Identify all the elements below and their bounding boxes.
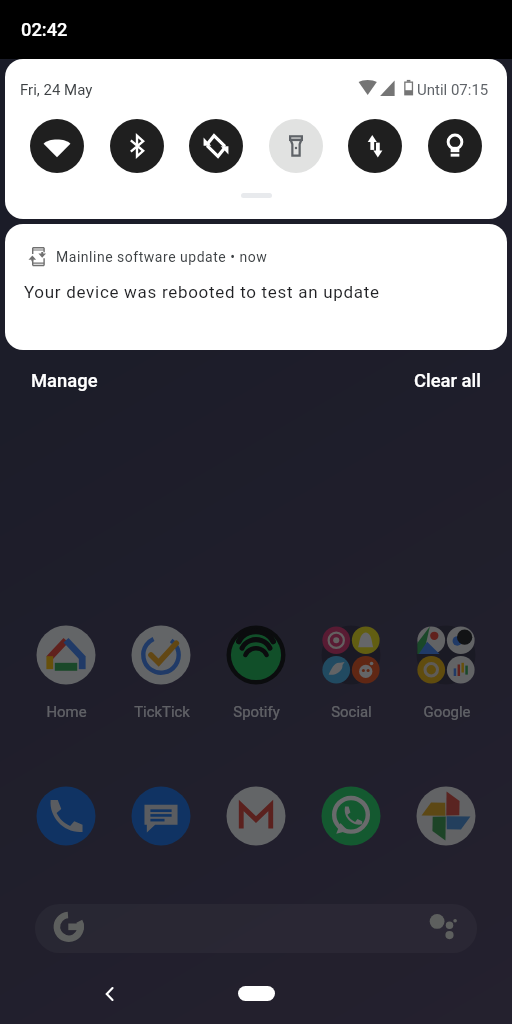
button[interactable]: Mainline software update • now [5,224,507,350]
staticText: Manage [31,370,98,392]
button[interactable]: Flashlight [269,119,323,173]
staticText: Until 07:15 [417,81,489,99]
button[interactable]: Auto-rotate [189,119,243,173]
staticText: Google [423,703,471,720]
staticText: Home [46,703,87,720]
staticText: TickTick [134,703,190,720]
button[interactable]: Bluetooth [110,119,164,173]
staticText: Mainline software update • now [56,249,268,265]
staticText: 02:42 [21,19,68,40]
staticText: Spotify [233,703,280,720]
button[interactable]: Mobile data [348,119,402,173]
button[interactable]: Search [35,904,477,953]
button[interactable]: Home [238,986,275,1001]
staticText: Fri, 24 May [20,81,93,99]
staticText: Social [331,703,372,720]
staticText: Clear all [414,370,481,392]
button[interactable]: Wi-Fi [30,119,84,173]
staticText: Your device was rebooted to test an upda… [24,282,380,302]
button[interactable]: Battery saver [428,119,482,173]
button[interactable]: Back [94,978,126,1010]
button[interactable]: Manage [23,364,106,398]
button[interactable]: Clear all [406,364,489,398]
